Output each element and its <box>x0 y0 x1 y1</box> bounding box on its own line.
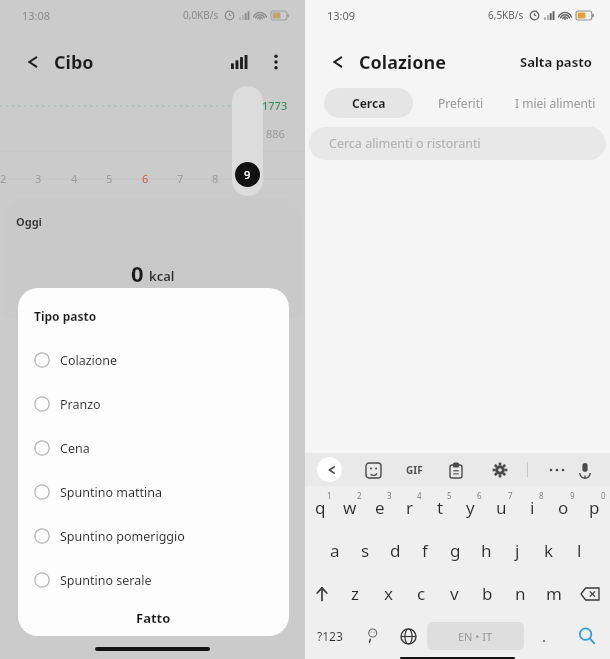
staticText: w <box>343 496 357 519</box>
button[interactable]: Salta pasto <box>516 49 596 75</box>
button[interactable]: p <box>579 486 610 529</box>
button[interactable]: k <box>533 529 564 572</box>
button[interactable]: d <box>380 529 410 572</box>
staticText: Oggi <box>16 214 42 229</box>
button[interactable]: u <box>486 486 517 529</box>
staticText: Tipo pasto <box>34 308 97 324</box>
staticText: 3 <box>387 490 392 501</box>
staticText: Cerca <box>352 95 386 111</box>
button[interactable]: More <box>546 459 568 481</box>
button[interactable]: Settings <box>489 459 511 481</box>
staticText: 886 <box>266 126 285 141</box>
button[interactable]: a <box>320 529 350 572</box>
staticText: Salta pasto <box>520 53 592 71</box>
button[interactable]: . <box>524 615 564 657</box>
staticText: 1773 <box>262 98 288 113</box>
button[interactable]: I miei alimenti <box>508 88 603 118</box>
button[interactable]: More options <box>261 47 291 77</box>
button[interactable]: b <box>471 572 504 615</box>
staticText: 7 <box>508 490 513 501</box>
button[interactable]: ?123 <box>305 615 355 657</box>
staticText: Fatto <box>136 609 171 627</box>
button[interactable]: o <box>548 486 579 529</box>
button[interactable]: t <box>425 486 455 529</box>
button[interactable]: Fatto <box>18 604 289 632</box>
button[interactable]: v <box>438 572 471 615</box>
button[interactable]: z <box>338 572 372 615</box>
staticText: Pranzo <box>60 396 101 413</box>
staticText: g <box>450 539 461 562</box>
staticText: 5 <box>447 490 452 501</box>
button[interactable]: s <box>350 529 380 572</box>
staticText: v <box>450 582 459 605</box>
staticText: Cibo <box>54 50 94 75</box>
button[interactable]: Change language <box>389 615 427 657</box>
button[interactable]: q <box>305 486 335 529</box>
button[interactable]: e <box>365 486 395 529</box>
button[interactable]: Cerca alimenti o ristoranti <box>309 127 606 160</box>
staticText: 13:09 <box>327 8 356 23</box>
button[interactable]: j <box>502 529 533 572</box>
button[interactable]: x <box>372 572 405 615</box>
button[interactable]: Stickers <box>362 459 384 481</box>
button[interactable]: Back <box>14 46 46 78</box>
staticText: I miei alimenti <box>515 95 596 111</box>
button[interactable]: Pranzo <box>18 382 289 426</box>
button[interactable]: Spuntino pomeriggio <box>18 514 289 558</box>
staticText: c <box>417 582 426 605</box>
staticText: i <box>530 496 535 519</box>
staticText: kcal <box>149 267 175 285</box>
button[interactable]: w <box>335 486 365 529</box>
button[interactable]: l <box>564 529 595 572</box>
button[interactable]: Preferiti <box>413 88 508 118</box>
staticText: 0 <box>601 490 606 501</box>
button[interactable]: EN • IT <box>427 622 524 650</box>
staticText: u <box>496 496 507 519</box>
staticText: 13:08 <box>22 8 51 23</box>
button[interactable]: Emoji and comma <box>355 615 389 657</box>
button[interactable]: i <box>517 486 548 529</box>
button[interactable]: Voice input <box>574 459 596 481</box>
button[interactable]: Expand toolbar <box>317 457 342 482</box>
button[interactable]: h <box>471 529 502 572</box>
staticText: k <box>544 539 554 562</box>
button[interactable]: Spuntino serale <box>18 558 289 602</box>
button[interactable]: Back <box>319 46 351 78</box>
button[interactable]: f <box>410 529 440 572</box>
button[interactable]: y <box>455 486 486 529</box>
button[interactable] <box>232 86 263 196</box>
button[interactable]: Clipboard <box>445 459 467 481</box>
staticText: Spuntino mattina <box>60 484 162 501</box>
staticText: Cena <box>60 440 90 457</box>
staticText: t <box>437 496 444 519</box>
staticText: m <box>546 582 562 605</box>
button[interactable]: Spuntino mattina <box>18 470 289 514</box>
staticText: s <box>361 539 370 562</box>
staticText: n <box>515 582 526 605</box>
button[interactable]: GIF <box>406 463 423 477</box>
staticText: 6,5KB/s <box>488 8 524 22</box>
staticText: h <box>481 539 492 562</box>
button[interactable]: Cena <box>18 426 289 470</box>
staticText: x <box>384 582 393 605</box>
button[interactable]: c <box>405 572 438 615</box>
button[interactable]: Cerca <box>324 88 413 118</box>
button[interactable]: m <box>537 572 570 615</box>
staticText: f <box>422 539 428 562</box>
staticText: Colazione <box>359 50 446 75</box>
staticText: ?123 <box>317 628 343 644</box>
staticText: Colazione <box>60 352 118 369</box>
staticText: Spuntino serale <box>60 572 152 589</box>
button[interactable]: Shift <box>305 572 338 615</box>
button[interactable]: r <box>395 486 425 529</box>
button[interactable]: Search <box>564 615 610 657</box>
staticText: 6 <box>477 490 482 501</box>
button[interactable]: Backspace <box>570 572 610 615</box>
staticText: Spuntino pomeriggio <box>60 528 185 545</box>
button[interactable]: Statistics <box>223 47 253 77</box>
button[interactable]: n <box>504 572 537 615</box>
button[interactable]: Colazione <box>18 338 289 382</box>
staticText: l <box>577 539 582 562</box>
staticText: 8 <box>539 490 544 501</box>
button[interactable]: g <box>440 529 471 572</box>
